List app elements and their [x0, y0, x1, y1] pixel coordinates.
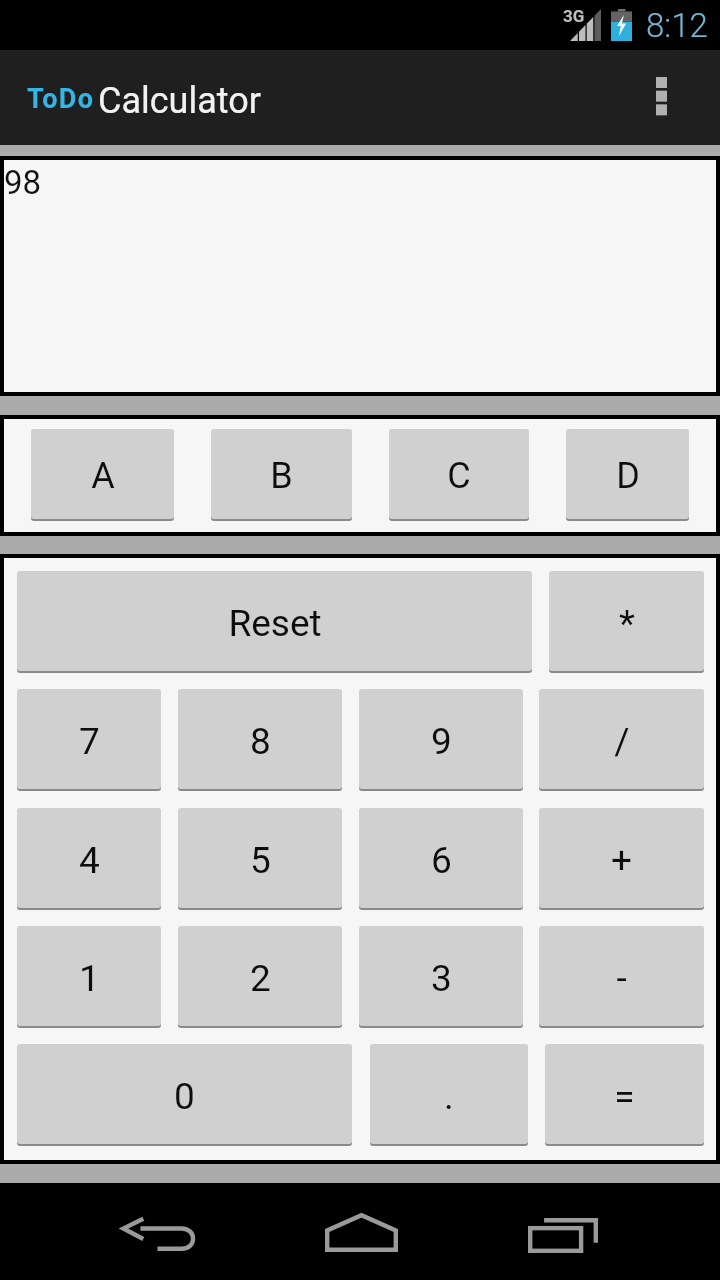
staticText: 3: [431, 957, 452, 1000]
button[interactable]: Recent apps: [503, 1190, 623, 1280]
staticText: 3G: [563, 6, 585, 26]
button[interactable]: .: [370, 1044, 528, 1146]
staticText: C: [447, 455, 471, 497]
button[interactable]: Back: [97, 1190, 217, 1280]
button[interactable]: 9: [359, 689, 523, 791]
staticText: *: [619, 602, 635, 645]
button[interactable]: /: [539, 689, 704, 791]
button[interactable]: 4: [17, 808, 161, 910]
staticText: Reset: [228, 602, 322, 645]
button[interactable]: -: [539, 926, 704, 1028]
button[interactable]: *: [549, 571, 704, 673]
staticText: 1: [79, 957, 100, 1000]
button[interactable]: =: [545, 1044, 704, 1146]
staticText: Calculator: [98, 80, 261, 122]
button[interactable]: 3: [359, 926, 523, 1028]
staticText: 8: [250, 720, 271, 763]
staticText: /: [614, 720, 630, 763]
button[interactable]: 1: [17, 926, 161, 1028]
button[interactable]: 0: [17, 1044, 352, 1146]
button[interactable]: 6: [359, 808, 523, 910]
staticText: D: [616, 455, 640, 497]
button[interactable]: Reset: [17, 571, 532, 673]
staticText: -: [616, 957, 627, 1000]
staticText: B: [270, 455, 293, 497]
staticText: 9: [431, 720, 452, 763]
staticText: 0: [174, 1075, 195, 1118]
staticText: =: [614, 1075, 635, 1118]
staticText: 2: [250, 957, 271, 1000]
staticText: 98: [4, 163, 42, 202]
button[interactable]: 7: [17, 689, 161, 791]
staticText: +: [611, 839, 632, 882]
button[interactable]: C: [389, 429, 529, 521]
button[interactable]: 8: [178, 689, 342, 791]
staticText: 8:12: [646, 6, 708, 45]
button[interactable]: 2: [178, 926, 342, 1028]
button[interactable]: More options: [626, 50, 702, 145]
staticText: 6: [431, 839, 452, 882]
button[interactable]: +: [539, 808, 704, 910]
staticText: .: [444, 1075, 454, 1118]
button[interactable]: D: [566, 429, 689, 521]
button[interactable]: A: [31, 429, 174, 521]
staticText: 7: [79, 720, 100, 763]
staticText: A: [91, 455, 115, 497]
button[interactable]: 5: [178, 808, 342, 910]
staticText: ToDo: [27, 83, 95, 115]
button[interactable]: B: [211, 429, 352, 521]
button[interactable]: Home: [301, 1187, 421, 1277]
staticText: 5: [250, 839, 271, 882]
staticText: 4: [79, 839, 100, 882]
